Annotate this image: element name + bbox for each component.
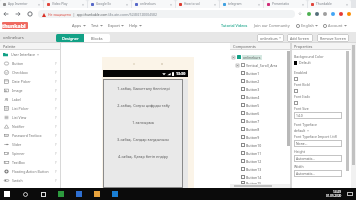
button[interactable]: Show desktop <box>347 192 353 196</box>
button[interactable]: Apps <box>72 23 86 28</box>
button[interactable]: Task View <box>41 192 46 197</box>
button[interactable]: Enabled <box>294 77 298 81</box>
staticText: ? <box>55 134 57 138</box>
button[interactable]: List Picker <box>0 104 61 113</box>
button[interactable]: Button15 <box>230 181 291 184</box>
button[interactable]: Extension <box>315 12 319 16</box>
button[interactable]: Extension <box>331 12 335 16</box>
button[interactable]: Remove Screen <box>317 34 349 42</box>
button[interactable]: 3-сабақ. Сандар заңдылығы <box>103 131 183 148</box>
button[interactable]: Forward <box>15 11 21 17</box>
button[interactable]: onlinekurs <box>230 53 291 61</box>
button[interactable]: Floating Action Button <box>0 167 61 176</box>
button[interactable]: 4-сабақ. Қатар бетін ендіру <box>103 148 183 165</box>
button[interactable]: Не защищено <box>38 10 295 18</box>
button[interactable]: Button7 <box>230 117 291 125</box>
button[interactable]: Tutorial Videos <box>221 23 248 28</box>
button[interactable]: Button3 <box>230 85 291 93</box>
button[interactable]: Image <box>0 86 61 95</box>
button[interactable]: English <box>296 23 318 28</box>
button[interactable]: Button11 <box>230 149 291 157</box>
button[interactable]: Search <box>23 192 28 197</box>
staticText: Button13 <box>246 167 262 172</box>
button[interactable]: Extension <box>307 12 311 16</box>
button[interactable]: Button4 <box>230 93 291 101</box>
button[interactable]: Checkbox <box>0 68 61 77</box>
button[interactable]: Button1 <box>230 69 291 77</box>
button[interactable]: Notifier <box>0 122 61 131</box>
button[interactable]: ☆ <box>298 11 303 16</box>
button[interactable]: Button5 <box>230 101 291 109</box>
button[interactable]: List View <box>0 113 61 122</box>
button[interactable]: Date Picker <box>0 77 61 86</box>
button[interactable]: Button13 <box>230 165 291 173</box>
button[interactable]: Reload <box>27 11 33 17</box>
button[interactable]: Test <box>91 23 103 28</box>
button[interactable]: None... <box>294 140 342 147</box>
button[interactable]: App Inventor <box>0 0 43 8</box>
button[interactable]: Add Screen <box>287 34 313 42</box>
button[interactable]: Button12 <box>230 157 291 165</box>
button[interactable]: Join our Community <box>254 23 290 28</box>
button[interactable]: Spinner <box>0 149 61 158</box>
staticText: Button1 <box>246 71 260 76</box>
button[interactable]: Font Bold <box>294 89 298 93</box>
staticText: 14:29 <box>333 190 342 194</box>
button[interactable]: 1-тапсырма <box>103 114 183 131</box>
button[interactable]: Default <box>294 60 311 65</box>
staticText: 2-сабақ. Соңғы цифрды табу <box>117 103 170 108</box>
button[interactable]: Google Ex <box>88 0 131 8</box>
button[interactable]: Switch <box>0 176 61 185</box>
staticText: ? <box>55 116 57 120</box>
staticText: | app.thunkable.com <box>73 12 108 17</box>
button[interactable]: Font Italic <box>294 101 298 105</box>
button[interactable]: Button2 <box>230 77 291 85</box>
staticText: Date Picker <box>12 79 31 84</box>
button[interactable]: Button <box>0 59 61 68</box>
button[interactable]: Slider <box>0 140 61 149</box>
button[interactable]: Presentatio <box>264 0 307 8</box>
button[interactable]: Extension <box>339 12 343 16</box>
button[interactable]: Button10 <box>230 141 291 149</box>
staticText: 1-сабақ. Бағытталу белгілері <box>117 86 170 91</box>
button[interactable]: TextBox <box>0 158 61 167</box>
staticText: onlinekurs <box>3 35 24 41</box>
button[interactable]: default <box>294 128 309 133</box>
staticText: 14.0 <box>296 113 303 118</box>
button[interactable]: Blocks <box>84 34 110 42</box>
button[interactable]: 1-сабақ. Бағытталу белгілері <box>103 80 183 97</box>
button[interactable]: thunkable <box>2 22 28 29</box>
button[interactable]: Account <box>323 23 347 28</box>
button[interactable]: Button6 <box>230 109 291 117</box>
button[interactable]: Button14 <box>230 173 291 181</box>
button[interactable]: How to sol <box>176 0 219 8</box>
button[interactable]: Password Textbox <box>0 131 61 140</box>
button[interactable]: Video Play <box>44 0 87 8</box>
button[interactable]: Automatic... <box>294 155 342 162</box>
button[interactable]: Automatic... <box>294 170 342 177</box>
button[interactable]: Label <box>0 95 61 104</box>
button[interactable]: Vertical_Scroll_Arra <box>230 61 291 69</box>
button[interactable]: Extension <box>323 12 327 16</box>
button[interactable]: telegram <box>220 0 263 8</box>
button[interactable]: Button8 <box>230 125 291 133</box>
button[interactable]: 2-сабақ. Соңғы цифрды табу <box>103 97 183 114</box>
button[interactable]: User Interface <box>0 50 61 59</box>
button[interactable]: Thunkable <box>308 0 351 8</box>
staticText: Button9 <box>246 135 260 140</box>
button[interactable]: Export <box>108 23 124 28</box>
button[interactable]: onlinekurs <box>132 0 175 8</box>
button[interactable]: Extension <box>347 12 351 16</box>
button[interactable]: Button9 <box>230 133 291 141</box>
button[interactable]: onlinekurs <box>257 34 284 42</box>
staticText: Checkbox <box>12 70 28 75</box>
button[interactable]: Back <box>3 11 9 17</box>
button[interactable]: Designer <box>56 34 84 42</box>
button[interactable]: Help <box>129 23 142 28</box>
button[interactable]: 14.0 <box>294 112 342 119</box>
